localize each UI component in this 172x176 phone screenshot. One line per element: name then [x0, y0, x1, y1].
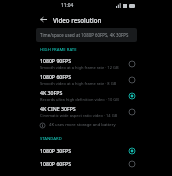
staticText: Video resolution — [53, 16, 102, 24]
button[interactable]: Unselected option — [127, 107, 136, 116]
staticText: Records ultra high definition video · 10… — [40, 97, 119, 102]
staticText: 11:04 — [61, 2, 74, 9]
staticText: HIGH FRAME RATE — [40, 47, 77, 53]
staticText: 4K 30FPS — [40, 89, 63, 96]
button[interactable]: 1080P 60FPS — [33, 71, 140, 87]
button[interactable]: Back — [37, 13, 50, 26]
staticText: Cinematic wide aspect ratio video · 14 G… — [40, 113, 118, 118]
staticText: 1080P 30FPS — [40, 147, 72, 154]
staticText: 1080P 60FPS — [40, 160, 72, 167]
staticText: STANDARD — [40, 136, 62, 142]
button[interactable]: Selected option — [127, 91, 136, 100]
staticText: Time/space used at 1080P 60FPS, 4K 30FPS — [40, 32, 129, 38]
button[interactable]: Time/space used at 1080P 60FPS, 4K 30FPS — [36, 28, 137, 42]
staticText: Smooth video at a high frame rate · 12 G… — [40, 65, 119, 70]
button[interactable]: Unselected option — [127, 159, 136, 168]
button[interactable]: Selected option — [127, 146, 136, 155]
button[interactable]: 4K uses more storage and battery — [33, 119, 140, 131]
staticText: Smooth video at a high frame rate · 8 GB — [40, 81, 117, 86]
staticText: 4K CINE 30FPS — [40, 105, 76, 112]
button[interactable]: Unselected option — [127, 59, 136, 68]
button[interactable]: 1080P 60FPS — [33, 157, 140, 170]
button[interactable]: 4K CINE 30FPS — [33, 103, 140, 119]
staticText: 4K uses more storage and battery — [49, 122, 116, 128]
button[interactable]: Unselected option — [127, 75, 136, 84]
staticText: 1080P 90FPS — [40, 57, 72, 64]
button[interactable]: 4K 30FPS — [33, 87, 140, 103]
button[interactable]: 1080P 90FPS — [33, 55, 140, 71]
staticText: 1080P 60FPS — [40, 73, 72, 80]
button[interactable]: 1080P 30FPS — [33, 144, 140, 157]
